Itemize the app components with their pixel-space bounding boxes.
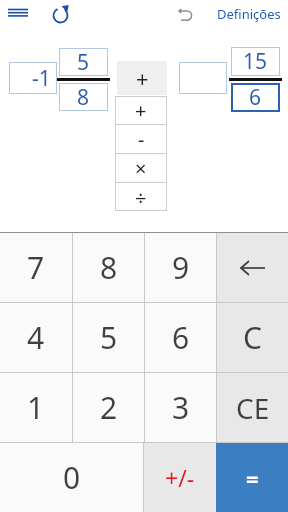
button[interactable]: Definições	[210, 0, 288, 28]
staticText: 15	[243, 47, 268, 76]
button[interactable]: 8	[59, 83, 108, 111]
button[interactable]: +/-	[144, 443, 216, 512]
staticText: 5	[100, 317, 118, 358]
staticText: 6	[172, 317, 190, 358]
button[interactable]: 7	[0, 233, 72, 302]
button[interactable]: ×	[115, 154, 167, 182]
staticText: 4	[27, 317, 45, 358]
staticText: +/-	[165, 462, 195, 493]
staticText: 8	[77, 83, 90, 111]
button[interactable]: 4	[0, 303, 72, 372]
button[interactable]	[48, 3, 74, 29]
staticText: 9	[172, 247, 190, 288]
button[interactable]: +	[117, 61, 167, 95]
staticText: ×	[135, 155, 147, 182]
staticText: 7	[27, 247, 45, 288]
staticText: 6	[249, 83, 262, 112]
button[interactable]: -1	[9, 62, 57, 94]
button[interactable]: 9	[145, 233, 216, 302]
button[interactable]	[217, 233, 288, 302]
staticText: 2	[100, 387, 118, 428]
button[interactable]: ÷	[115, 183, 167, 211]
button[interactable]	[175, 4, 199, 26]
button[interactable]: 0	[0, 443, 143, 512]
staticText: 3	[172, 387, 190, 428]
button[interactable]: 6	[231, 83, 280, 112]
button[interactable]: C	[217, 303, 288, 372]
staticText: -	[138, 126, 145, 153]
button[interactable]: +	[115, 96, 167, 124]
staticText: C	[243, 317, 262, 358]
button[interactable]: CE	[217, 373, 288, 442]
button[interactable]: 3	[145, 373, 216, 442]
staticText: 8	[100, 247, 118, 288]
staticText: -1	[32, 64, 51, 93]
staticText: CE	[236, 389, 270, 427]
button[interactable]	[179, 62, 227, 94]
staticText: 1	[27, 387, 45, 428]
staticText: 0	[63, 457, 81, 498]
button[interactable]: -	[115, 125, 167, 153]
button[interactable]: =	[216, 443, 288, 512]
button[interactable]: 5	[59, 48, 108, 76]
staticText: +	[136, 63, 149, 93]
button[interactable]: 8	[73, 233, 144, 302]
staticText: +	[135, 97, 147, 124]
button[interactable]: 2	[73, 373, 144, 442]
button[interactable]: 15	[231, 47, 280, 76]
button[interactable]: 5	[73, 303, 144, 372]
staticText: 5	[77, 48, 90, 76]
staticText: Definições	[217, 5, 281, 23]
button[interactable]: 6	[145, 303, 216, 372]
staticText: ÷	[135, 184, 147, 211]
button[interactable]: 1	[0, 373, 72, 442]
staticText: =	[246, 463, 259, 493]
button[interactable]	[2, 3, 34, 27]
